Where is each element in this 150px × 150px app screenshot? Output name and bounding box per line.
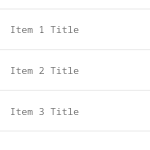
staticText: Item 1 Title (10, 22, 80, 35)
staticText: Item 3 Title (10, 105, 80, 118)
staticText: Item 2 Title (10, 64, 80, 77)
button[interactable]: Item 3 Title (0, 93, 150, 133)
button[interactable]: Item 1 Title (0, 10, 150, 50)
button[interactable]: Item 2 Title (0, 52, 150, 92)
